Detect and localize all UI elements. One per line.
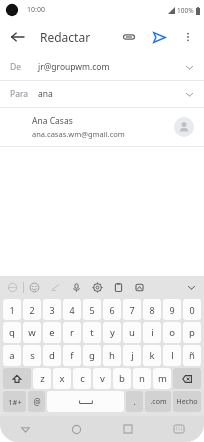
staticText: q bbox=[9, 326, 15, 339]
button[interactable]: 1#+ bbox=[3, 391, 26, 412]
button[interactable]: g bbox=[83, 345, 101, 366]
staticText: i bbox=[151, 326, 154, 339]
button[interactable]: Espacio bbox=[47, 391, 124, 412]
staticText: ana bbox=[38, 88, 185, 100]
staticText: w bbox=[28, 326, 36, 339]
button[interactable]: b bbox=[113, 368, 131, 389]
button[interactable]: Atrás bbox=[14, 418, 36, 440]
button[interactable]: ñ bbox=[183, 345, 201, 366]
button[interactable]: 7 bbox=[123, 299, 141, 320]
button[interactable]: j bbox=[123, 345, 141, 366]
staticText: 6 bbox=[109, 304, 115, 316]
staticText: 10:00 bbox=[27, 5, 45, 15]
button[interactable]: 2 bbox=[23, 299, 41, 320]
button[interactable]: 8 bbox=[143, 299, 161, 320]
staticText: j bbox=[131, 349, 134, 362]
button[interactable]: . bbox=[126, 391, 143, 412]
button[interactable]: Mayúsculas bbox=[3, 368, 31, 389]
staticText: v bbox=[100, 372, 105, 385]
staticText: z bbox=[40, 372, 45, 385]
button[interactable]: d bbox=[43, 345, 61, 366]
button[interactable]: z bbox=[33, 368, 51, 389]
button[interactable]: 6 bbox=[103, 299, 121, 320]
button[interactable]: Más opciones bbox=[174, 23, 202, 51]
staticText: Para bbox=[10, 88, 38, 100]
staticText: .com bbox=[150, 397, 167, 407]
button[interactable]: Emoji bbox=[24, 277, 45, 298]
button[interactable]: n bbox=[133, 368, 151, 389]
button[interactable]: u bbox=[123, 322, 141, 343]
button[interactable]: Contraer barra bbox=[182, 278, 200, 296]
staticText: 1#+ bbox=[8, 397, 22, 407]
button[interactable]: 4 bbox=[63, 299, 81, 320]
button[interactable]: Atrás bbox=[0, 20, 34, 54]
button[interactable]: Enviar bbox=[144, 22, 174, 52]
button[interactable]: Escritura a mano bbox=[45, 277, 66, 298]
button[interactable]: 5 bbox=[83, 299, 101, 320]
staticText: s bbox=[30, 349, 35, 362]
button[interactable]: e bbox=[43, 322, 61, 343]
button[interactable]: Adjuntar archivo bbox=[114, 22, 144, 52]
button[interactable]: y bbox=[103, 322, 121, 343]
button[interactable]: Adhesivos bbox=[129, 277, 150, 298]
button[interactable]: c bbox=[73, 368, 91, 389]
button[interactable]: v bbox=[93, 368, 111, 389]
button[interactable]: De bbox=[0, 54, 204, 80]
staticText: d bbox=[49, 349, 55, 362]
button[interactable]: f bbox=[63, 345, 81, 366]
staticText: a bbox=[9, 349, 15, 362]
staticText: r bbox=[70, 326, 74, 339]
button[interactable]: q bbox=[3, 322, 21, 343]
button[interactable]: @ bbox=[28, 391, 45, 412]
button[interactable]: o bbox=[163, 322, 181, 343]
staticText: 4 bbox=[69, 304, 75, 316]
button[interactable]: Traducir bbox=[2, 277, 23, 298]
button[interactable]: Para bbox=[0, 81, 204, 107]
button[interactable]: a bbox=[3, 345, 21, 366]
button[interactable]: w bbox=[23, 322, 41, 343]
staticText: m bbox=[158, 372, 167, 385]
staticText: e bbox=[49, 326, 55, 339]
button[interactable]: h bbox=[103, 345, 121, 366]
staticText: 100% bbox=[177, 6, 194, 15]
staticText: 7 bbox=[129, 304, 135, 316]
staticText: ñ bbox=[189, 349, 195, 362]
staticText: jr@groupwm.com bbox=[38, 61, 185, 73]
button[interactable]: 0 bbox=[183, 299, 201, 320]
staticText: @ bbox=[33, 396, 41, 407]
staticText: 8 bbox=[149, 304, 155, 316]
button[interactable]: 3 bbox=[43, 299, 61, 320]
button[interactable]: Retroceso bbox=[173, 368, 201, 389]
button[interactable]: 1 bbox=[3, 299, 21, 320]
button[interactable]: Ajustes bbox=[87, 277, 108, 298]
staticText: u bbox=[129, 326, 135, 339]
button[interactable]: m bbox=[153, 368, 171, 389]
staticText: 3 bbox=[49, 304, 55, 316]
button[interactable]: Portapapeles bbox=[108, 277, 129, 298]
staticText: Redactar bbox=[40, 29, 91, 45]
button[interactable]: i bbox=[143, 322, 161, 343]
staticText: 0 bbox=[189, 304, 195, 316]
staticText: 5 bbox=[89, 304, 95, 316]
staticText: h bbox=[109, 349, 115, 362]
button[interactable]: s bbox=[23, 345, 41, 366]
button[interactable]: Ocultar teclado bbox=[168, 418, 190, 440]
button[interactable]: Hecho bbox=[173, 391, 201, 412]
button[interactable]: t bbox=[83, 322, 101, 343]
staticText: 1 bbox=[9, 304, 15, 316]
button[interactable]: 9 bbox=[163, 299, 181, 320]
staticText: f bbox=[70, 349, 74, 362]
staticText: p bbox=[189, 326, 195, 339]
button[interactable]: Dictado por voz bbox=[66, 277, 87, 298]
button[interactable]: k bbox=[143, 345, 161, 366]
button[interactable]: Recientes bbox=[117, 418, 139, 440]
button[interactable]: Ana Casas bbox=[0, 108, 204, 146]
button[interactable]: Inicio bbox=[65, 418, 87, 440]
button[interactable]: p bbox=[183, 322, 201, 343]
button[interactable]: l bbox=[163, 345, 181, 366]
button[interactable]: .com bbox=[145, 391, 171, 412]
button[interactable]: x bbox=[53, 368, 71, 389]
staticText: Ana Casas bbox=[32, 115, 73, 127]
staticText: g bbox=[89, 349, 95, 362]
button[interactable]: r bbox=[63, 322, 81, 343]
